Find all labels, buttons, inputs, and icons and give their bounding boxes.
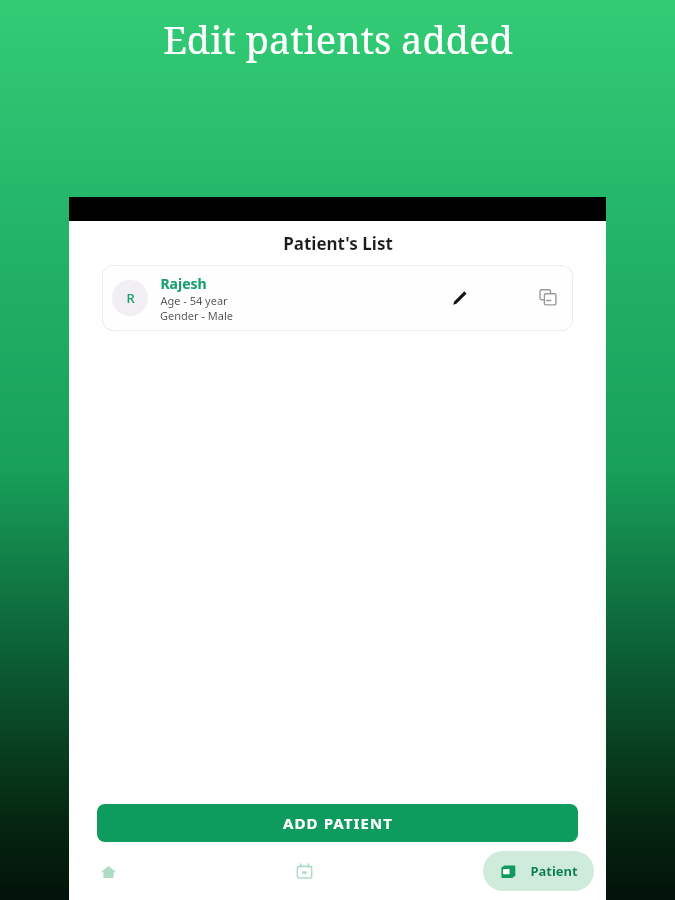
staticText: Edit patients added [163, 13, 513, 65]
button[interactable]: Home [91, 854, 125, 888]
staticText: ADD PATIENT [283, 813, 393, 833]
staticText: Age - 54 year [160, 293, 228, 308]
button[interactable]: Patient [483, 851, 594, 891]
button[interactable]: Copy patient [533, 283, 563, 313]
staticText: Patient's List [283, 232, 393, 255]
staticText: Gender - Male [160, 308, 233, 323]
button[interactable]: Edit patient [445, 283, 475, 313]
staticText: Rajesh [160, 274, 207, 293]
staticText: R [126, 289, 135, 307]
button[interactable]: ADD PATIENT [97, 804, 578, 842]
button[interactable]: R [102, 265, 573, 331]
staticText: Patient [530, 862, 578, 880]
button[interactable]: Appointments [287, 854, 321, 888]
